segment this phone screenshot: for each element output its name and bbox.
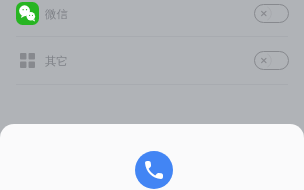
staticText: 其它 <box>45 54 68 68</box>
button[interactable]: 微信 <box>0 1 304 26</box>
button[interactable]: Call <box>135 151 173 189</box>
staticText: 微信 <box>45 7 68 21</box>
button[interactable]: 其它 <box>0 48 304 73</box>
button[interactable]: Toggle off <box>254 51 289 70</box>
button[interactable]: Toggle off <box>254 4 289 23</box>
